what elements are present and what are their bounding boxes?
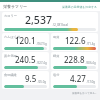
staticText: 240.5 — [15, 54, 36, 65]
button[interactable]: 食物繊維 — [2, 71, 49, 89]
staticText: 炭水化物 — [4, 54, 17, 58]
staticText: 栄養サマリー — [3, 4, 28, 9]
staticText: 栄養素の目標値を設定する — [62, 5, 97, 9]
staticText: 塩分 — [53, 73, 60, 77]
staticText: たんぱく質 — [4, 35, 21, 39]
button[interactable]: 脂質 — [51, 33, 98, 51]
staticText: 糖質 — [53, 54, 60, 58]
staticText: /327.4g — [36, 61, 47, 65]
staticText: 228.8 — [64, 54, 85, 65]
staticText: 122.6 — [65, 35, 86, 46]
staticText: /7.50g — [86, 80, 96, 84]
staticText: /306.4g — [85, 61, 96, 65]
button[interactable]: 糖質 — [51, 52, 98, 70]
staticText: 2,537 — [25, 13, 52, 27]
staticText: /2,381kcal — [52, 23, 69, 27]
button[interactable]: 塩分 — [51, 71, 98, 89]
button[interactable]: カロリー — [2, 12, 98, 32]
staticText: 120.1 — [15, 35, 36, 46]
staticText: カロリー — [4, 14, 17, 18]
button[interactable]: 栄養素の目標値を設定する — [62, 5, 97, 9]
staticText: /25.0g — [37, 80, 47, 84]
staticText: 食物繊維 — [4, 73, 17, 77]
staticText: /71.4g — [86, 42, 96, 46]
button[interactable]: 炭水化物 — [2, 52, 49, 70]
staticText: 9.5 — [25, 73, 37, 84]
staticText: 脂質 — [53, 35, 60, 39]
staticText: 栄養素をすべて見る › — [72, 91, 97, 94]
button[interactable]: たんぱく質 — [2, 33, 49, 51]
staticText: /167.5g — [36, 42, 47, 46]
staticText: 4.27 — [70, 73, 86, 84]
button[interactable]: 栄養素をすべて見る › — [72, 91, 98, 94]
